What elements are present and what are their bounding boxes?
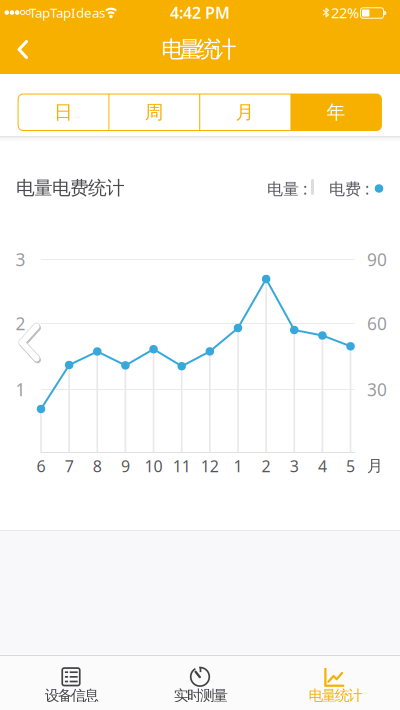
button[interactable]: 周 xyxy=(109,94,199,130)
button[interactable]: 电量统计 xyxy=(275,655,395,710)
staticText: 月 xyxy=(367,456,383,476)
staticText: 电量 : xyxy=(267,178,307,199)
staticText: 日 xyxy=(54,101,73,124)
button[interactable]: Previous page xyxy=(11,320,47,364)
staticText: 2 xyxy=(262,455,271,477)
staticText: 电费 : xyxy=(329,178,369,199)
staticText: 10 xyxy=(145,455,163,477)
staticText: 电量统计 xyxy=(161,36,237,63)
staticText: 9 xyxy=(121,455,130,477)
staticText: 7 xyxy=(65,455,74,477)
staticText: 1 xyxy=(233,455,242,477)
staticText: TapTapIdeas xyxy=(29,4,105,21)
staticText: 1 xyxy=(15,378,25,401)
staticText: 4 xyxy=(318,455,327,477)
staticText: 5 xyxy=(346,455,355,477)
button[interactable]: 日 xyxy=(18,94,108,130)
staticText: 60 xyxy=(367,312,387,335)
staticText: 4:42 PM xyxy=(170,2,230,23)
staticText: 90 xyxy=(367,248,387,271)
staticText: 30 xyxy=(367,378,387,401)
staticText: 3 xyxy=(290,455,299,477)
button[interactable]: 实时测量 xyxy=(140,655,260,710)
button[interactable]: 月 xyxy=(200,94,290,130)
staticText: 12 xyxy=(201,455,219,477)
staticText: 2 xyxy=(15,312,25,335)
staticText: 年 xyxy=(326,101,345,124)
staticText: 电量统计 xyxy=(308,686,363,704)
staticText: 11 xyxy=(173,455,191,477)
staticText: 8 xyxy=(93,455,102,477)
staticText: 设备信息 xyxy=(45,686,99,704)
button[interactable]: 设备信息 xyxy=(11,655,131,710)
staticText: 月 xyxy=(236,101,255,124)
button[interactable]: 年 xyxy=(291,94,381,130)
staticText: 3 xyxy=(15,248,25,271)
staticText: 周 xyxy=(145,101,164,124)
staticText: 22% xyxy=(331,3,359,22)
staticText: 6 xyxy=(36,455,45,477)
staticText: 实时测量 xyxy=(174,686,228,704)
button[interactable]: Back xyxy=(2,27,46,71)
staticText: 电量电费统计 xyxy=(16,176,125,199)
